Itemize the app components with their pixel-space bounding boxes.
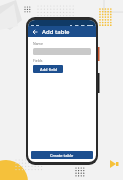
button[interactable]: Back	[31, 28, 39, 36]
button[interactable]: Add field	[33, 65, 63, 73]
staticText: Fields	[33, 58, 43, 63]
staticText: Add field	[40, 67, 57, 72]
staticText: Name	[33, 41, 43, 46]
staticText: Create table	[50, 153, 74, 158]
button[interactable]: Create table	[31, 151, 93, 159]
staticText: Add table	[42, 28, 70, 36]
